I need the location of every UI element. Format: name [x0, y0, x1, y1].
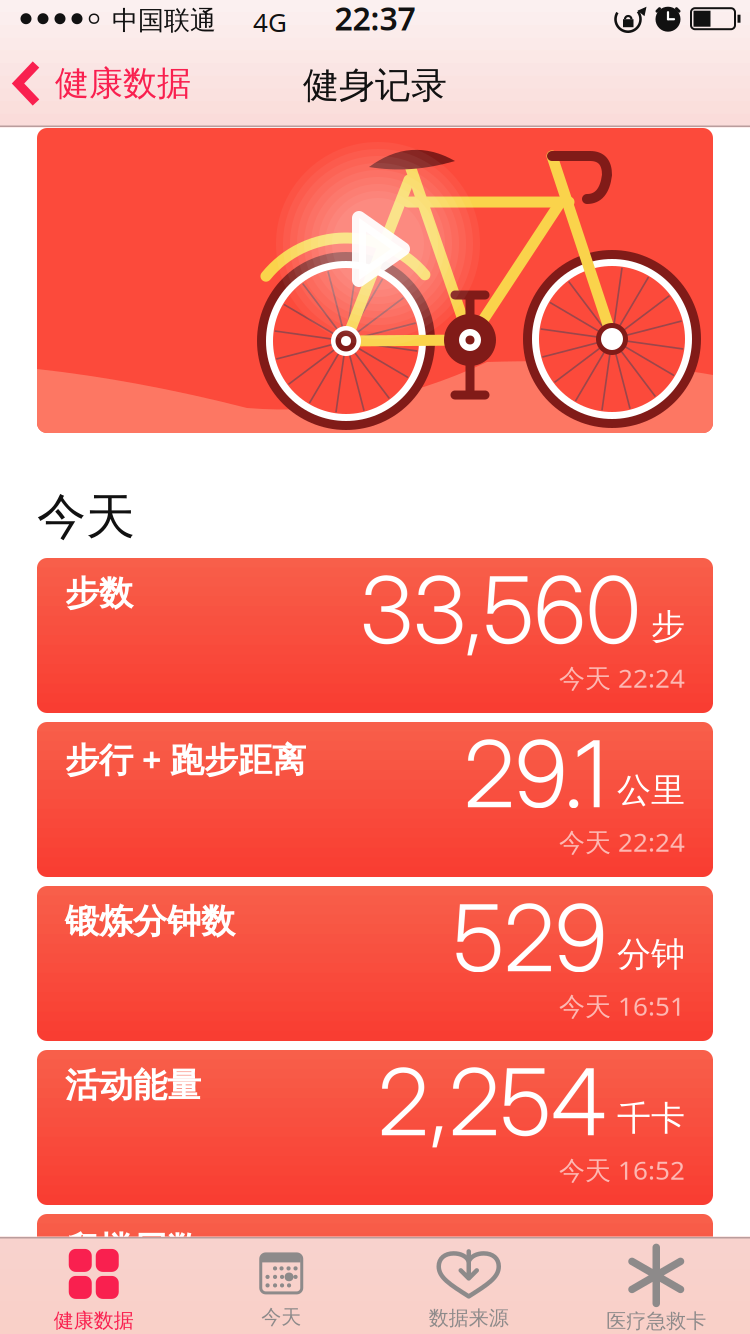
staticText: 爬楼层数: [65, 1228, 201, 1271]
button[interactable]: 步数: [37, 558, 713, 713]
staticText: 今天 22:24: [559, 660, 685, 695]
staticText: 健身记录: [303, 63, 447, 108]
staticText: 步: [651, 605, 685, 648]
staticText: 千卡: [617, 1097, 685, 1140]
staticText: 今天 22:24: [559, 824, 685, 859]
button[interactable]: 步行 + 跑步距离: [37, 722, 713, 877]
staticText: 529: [453, 882, 607, 993]
button[interactable]: 锻炼分钟数: [37, 886, 713, 1041]
staticText: 今天 16:51: [559, 988, 685, 1023]
staticText: 公里: [617, 769, 685, 812]
staticText: 步行 + 跑步距离: [65, 736, 306, 782]
staticText: 33,560: [360, 554, 641, 665]
button[interactable]: 活动能量: [37, 1050, 713, 1205]
staticText: 22:37: [334, 0, 415, 40]
staticText: 活动能量: [65, 1064, 201, 1107]
button[interactable]: 今天: [187, 1243, 375, 1334]
button[interactable]: 爬楼层数: [37, 1214, 713, 1334]
button[interactable]: 数据来源: [375, 1243, 562, 1334]
staticText: 健康数据: [54, 1308, 134, 1333]
staticText: 分钟: [617, 933, 685, 976]
staticText: 2,254: [378, 1046, 607, 1157]
staticText: 步数: [65, 572, 133, 615]
button[interactable]: 医疗急救卡: [562, 1243, 750, 1334]
button[interactable]: 健康数据: [0, 40, 191, 127]
staticText: 中国联通: [112, 4, 216, 37]
staticText: 今天: [37, 486, 135, 548]
staticText: 数据来源: [429, 1305, 509, 1331]
staticText: 今天: [261, 1304, 301, 1330]
staticText: 医疗急救卡: [606, 1308, 706, 1334]
staticText: 今天 16:52: [559, 1152, 685, 1187]
staticText: 锻炼分钟数: [65, 900, 235, 943]
staticText: 健康数据: [55, 62, 191, 105]
button[interactable]: 健康数据: [0, 1243, 187, 1334]
staticText: 29.1: [464, 718, 607, 829]
staticText: 4G: [253, 4, 287, 40]
button[interactable]: 播放健身记录视频: [37, 128, 713, 433]
